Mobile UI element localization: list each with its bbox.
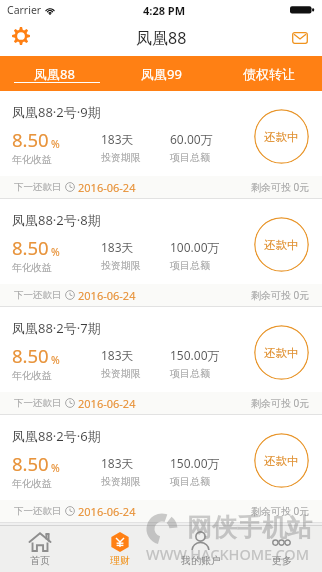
- staticText: 投资期限: [101, 151, 141, 164]
- staticText: 100.00万: [170, 239, 220, 255]
- button[interactable]: 债权转让: [215, 56, 322, 91]
- staticText: 首页: [30, 554, 50, 567]
- staticText: 年化收益: [12, 261, 52, 274]
- staticText: 剩余可投 0元: [251, 180, 310, 194]
- staticText: %: [51, 353, 60, 367]
- staticText: 4:28 PM: [143, 3, 186, 18]
- staticText: 凤凰99: [141, 65, 182, 83]
- staticText: 项目总额: [170, 259, 210, 272]
- staticText: 还款中: [264, 454, 299, 468]
- staticText: 项目总额: [170, 367, 210, 380]
- staticText: 2016-06-24: [78, 504, 136, 519]
- staticText: 8.50: [12, 343, 49, 368]
- button[interactable]: 凤凰88·2号·7期: [0, 307, 322, 415]
- staticText: 凤凰88: [34, 65, 75, 83]
- staticText: 剩余可投 0元: [251, 288, 310, 302]
- staticText: 150.00万: [170, 455, 220, 471]
- staticText: 年化收益: [12, 477, 52, 490]
- button[interactable]: Messages: [284, 22, 316, 54]
- button[interactable]: 更多: [241, 526, 322, 572]
- staticText: %: [51, 245, 60, 259]
- staticText: 183天: [101, 455, 134, 471]
- staticText: 60.00万: [170, 131, 213, 147]
- staticText: 8.50: [12, 127, 49, 152]
- staticText: 债权转让: [243, 66, 295, 82]
- staticText: 项目总额: [170, 475, 210, 488]
- staticText: 理财: [110, 554, 130, 567]
- staticText: 年化收益: [12, 153, 52, 166]
- staticText: 下一还款日: [14, 289, 62, 301]
- staticText: 更多: [272, 554, 292, 567]
- staticText: 投资期限: [101, 367, 141, 380]
- staticText: 还款中: [264, 130, 299, 144]
- staticText: 投资期限: [101, 259, 141, 272]
- staticText: 凤凰88: [136, 27, 187, 49]
- staticText: %: [51, 461, 60, 475]
- staticText: 下一还款日: [14, 505, 62, 517]
- button[interactable]: Settings: [5, 20, 37, 52]
- staticText: 剩余可投 0元: [251, 396, 310, 410]
- button[interactable]: 还款中: [254, 109, 309, 164]
- staticText: 183天: [101, 239, 134, 255]
- staticText: 150.00万: [170, 347, 220, 363]
- staticText: 还款中: [264, 346, 299, 360]
- staticText: 项目总额: [170, 151, 210, 164]
- staticText: 2016-06-24: [78, 288, 136, 303]
- button[interactable]: 还款中: [254, 325, 309, 380]
- staticText: Carrier: [7, 3, 42, 17]
- staticText: 凤凰88·2号·8期: [12, 211, 101, 229]
- staticText: 我的账户: [181, 554, 221, 567]
- staticText: 2016-06-24: [78, 180, 136, 195]
- staticText: WWW.HACKHOME.COM: [146, 544, 309, 564]
- staticText: 2016-06-24: [78, 396, 136, 411]
- staticText: 网侠手机站: [187, 512, 312, 543]
- staticText: 下一还款日: [14, 181, 62, 193]
- staticText: 还款中: [264, 238, 299, 252]
- staticText: 年化收益: [12, 369, 52, 382]
- button[interactable]: 凤凰99: [108, 56, 215, 91]
- staticText: 8.50: [12, 451, 49, 476]
- staticText: 183天: [101, 131, 134, 147]
- staticText: 凤凰88·2号·9期: [12, 103, 101, 121]
- button[interactable]: 首页: [0, 526, 80, 572]
- staticText: 8.50: [12, 235, 49, 260]
- button[interactable]: 我的账户: [160, 526, 241, 572]
- staticText: 投资期限: [101, 475, 141, 488]
- button[interactable]: 凤凰88·2号·9期: [0, 91, 322, 199]
- button[interactable]: 凤凰88·2号·6期: [0, 415, 322, 523]
- staticText: 183天: [101, 347, 134, 363]
- button[interactable]: 凤凰88·2号·8期: [0, 199, 322, 307]
- staticText: 凤凰88·2号·6期: [12, 427, 101, 445]
- staticText: %: [51, 137, 60, 151]
- staticText: 凤凰88·2号·7期: [12, 319, 101, 337]
- staticText: 剩余可投 0元: [251, 504, 310, 518]
- staticText: 下一还款日: [14, 397, 62, 409]
- button[interactable]: 凤凰88: [0, 56, 108, 91]
- button[interactable]: 理财: [80, 526, 160, 572]
- button[interactable]: 还款中: [254, 217, 309, 272]
- button[interactable]: 还款中: [254, 433, 309, 488]
